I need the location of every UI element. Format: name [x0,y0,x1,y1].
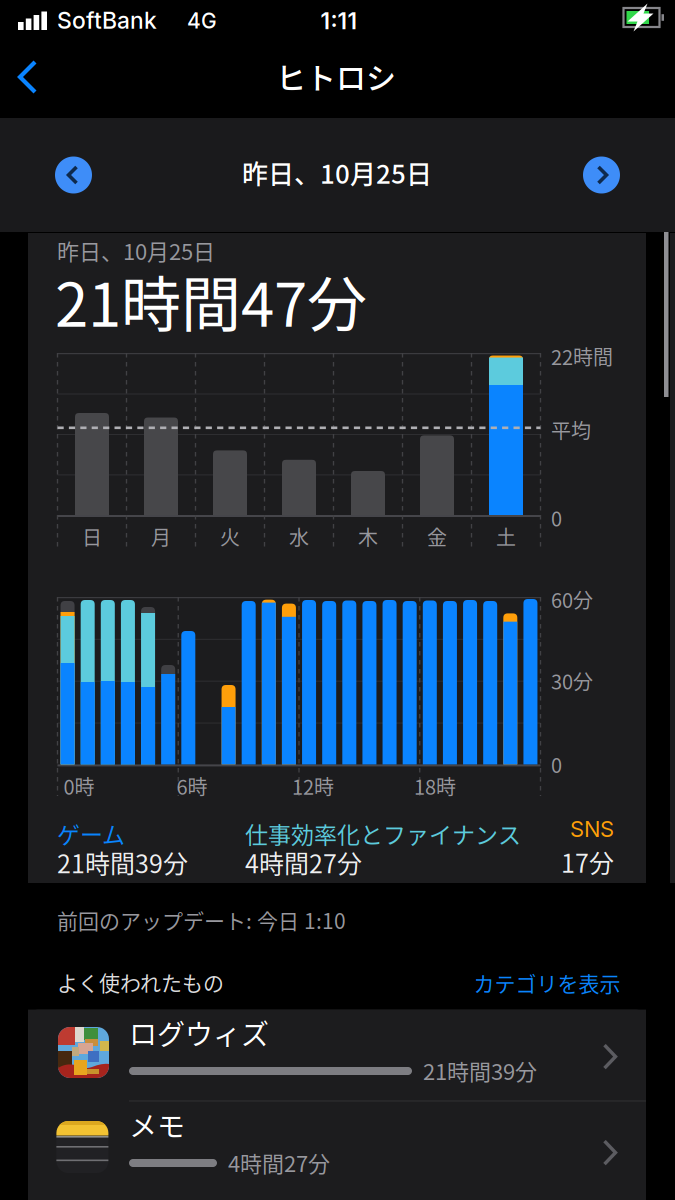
button[interactable]: Back [9,52,47,102]
staticText: 昨日、10月25日 [57,234,215,266]
staticText: 土 [496,522,516,551]
button[interactable]: 前の日 [55,156,92,193]
staticText: 平均 [551,415,591,444]
staticText: よく使われたもの [57,967,224,997]
staticText: 仕事効率化とファイナンス [245,817,521,850]
staticText: 18時 [414,771,456,800]
staticText: 昨日、10月25日 [242,154,432,191]
staticText: 木 [358,522,378,551]
staticText: ゲーム [57,817,125,850]
staticText: ヒトロシ [276,54,396,98]
staticText: ログウィズ [129,1013,269,1053]
staticText: 21時間39分 [423,1054,537,1086]
staticText: 金 [427,522,447,551]
staticText: 30分 [551,666,593,695]
staticText: 1:11 [320,7,357,35]
button[interactable]: 次の日 [583,156,620,193]
staticText: SNS [570,816,614,842]
staticText: 火 [220,522,240,551]
staticText: 月 [151,522,171,551]
button[interactable]: メモ [28,1102,646,1200]
staticText: 0 [551,503,562,532]
staticText: 0 [551,750,562,779]
staticText: 21時間47分 [55,257,367,344]
staticText: SoftBank [57,6,157,34]
staticText: 水 [289,522,309,551]
staticText: 0時 [63,771,94,800]
staticText: 17分 [561,844,614,880]
staticText: 12時 [292,771,334,800]
button[interactable]: ログウィズ [28,1010,646,1101]
staticText: 4時間27分 [228,1146,330,1178]
staticText: 21時間39分 [57,844,188,880]
staticText: メモ [129,1105,185,1145]
staticText: 前回のアップデート: 今日 1:10 [57,905,346,935]
staticText: 6時 [176,771,207,800]
staticText: 日 [82,522,102,551]
button[interactable]: カテゴリを表示 [473,967,620,998]
staticText: カテゴリを表示 [473,967,620,998]
staticText: 4時間27分 [245,844,362,880]
staticText: 60分 [551,585,593,614]
staticText: 4G [187,8,217,34]
staticText: 22時間 [551,342,613,371]
